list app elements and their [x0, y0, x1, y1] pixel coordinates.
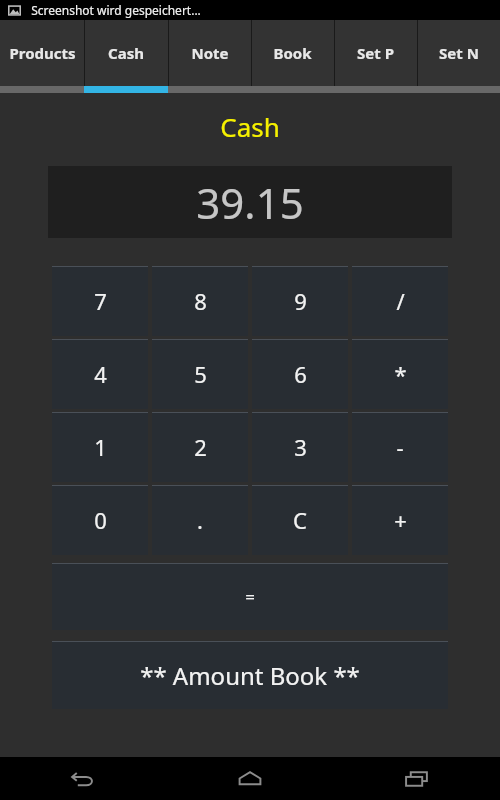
staticText: 9 — [294, 286, 307, 316]
button[interactable]: Products — [0, 20, 84, 86]
button[interactable]: . — [152, 485, 248, 555]
button[interactable]: Recent apps — [333, 757, 500, 800]
staticText: C — [293, 505, 307, 535]
button[interactable]: * — [352, 339, 448, 409]
staticText: 39.15 — [196, 174, 304, 231]
staticText: Cash — [220, 109, 280, 144]
staticText: = — [245, 585, 255, 608]
staticText: Screenshot wird gespeichert... — [31, 2, 201, 18]
staticText: Note — [191, 43, 229, 63]
button[interactable]: Note — [168, 20, 251, 86]
button[interactable]: - — [352, 412, 448, 482]
button[interactable]: 6 — [252, 339, 348, 409]
button[interactable]: Cash — [84, 20, 168, 86]
button[interactable]: 9 — [252, 266, 348, 336]
button[interactable]: 5 — [152, 339, 248, 409]
button[interactable]: ** Amount Book ** — [52, 641, 448, 709]
staticText: 4 — [94, 359, 107, 389]
button[interactable]: 4 — [52, 339, 148, 409]
staticText: Set P — [357, 43, 394, 63]
button[interactable]: Home — [166, 757, 333, 800]
button[interactable]: 0 — [52, 485, 148, 555]
button[interactable]: Set N — [417, 20, 500, 86]
staticText: * — [394, 359, 407, 389]
staticText: 7 — [94, 286, 107, 316]
button[interactable]: 3 — [252, 412, 348, 482]
staticText: 1 — [94, 432, 107, 462]
staticText: 2 — [194, 432, 207, 462]
staticText: / — [396, 286, 405, 316]
button[interactable]: Book — [251, 20, 334, 86]
staticText: ** Amount Book ** — [140, 659, 360, 692]
staticText: . — [197, 505, 203, 535]
button[interactable]: / — [352, 266, 448, 336]
staticText: 3 — [294, 432, 307, 462]
button[interactable]: 2 — [152, 412, 248, 482]
staticText: 6 — [294, 359, 307, 389]
button[interactable]: 7 — [52, 266, 148, 336]
staticText: 5 — [194, 359, 207, 389]
button[interactable]: = — [52, 563, 448, 630]
button[interactable]: C — [252, 485, 348, 555]
staticText: 0 — [94, 505, 107, 535]
staticText: - — [396, 432, 404, 462]
staticText: + — [394, 505, 407, 535]
button[interactable]: Back — [0, 757, 166, 800]
staticText: Products — [9, 43, 76, 63]
button[interactable]: Set P — [334, 20, 417, 86]
staticText: 8 — [194, 286, 207, 316]
button[interactable]: 1 — [52, 412, 148, 482]
staticText: Set N — [439, 43, 479, 63]
button[interactable]: 8 — [152, 266, 248, 336]
staticText: Cash — [108, 43, 144, 63]
button[interactable]: + — [352, 485, 448, 555]
staticText: Book — [273, 43, 312, 63]
